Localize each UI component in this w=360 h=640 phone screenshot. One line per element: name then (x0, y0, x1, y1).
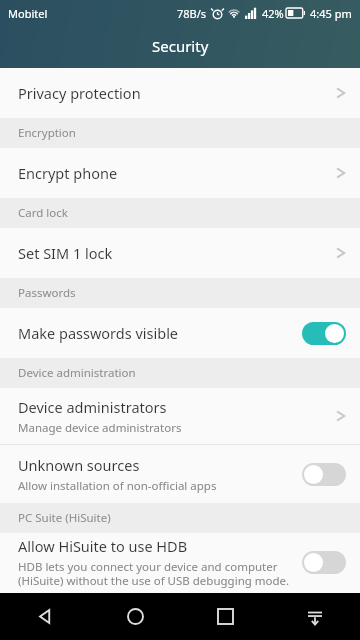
staticText: Passwords (18, 285, 76, 301)
button[interactable]: Toggle off (302, 463, 346, 486)
staticText: 78B/s (177, 6, 207, 21)
staticText: Encryption (18, 125, 76, 141)
button[interactable]: Privacy protection (0, 68, 360, 118)
staticText: Make passwords visible (18, 323, 179, 343)
button[interactable]: Hide navigation bar (270, 593, 360, 640)
staticText: Allow HiSuite to use HDB (18, 536, 188, 556)
staticText: Allow installation of non-official apps (18, 478, 217, 494)
button[interactable]: Home (90, 593, 180, 640)
staticText: Privacy protection (18, 83, 141, 103)
staticText: 42% (262, 6, 284, 21)
button[interactable]: Toggle off (302, 551, 346, 574)
staticText: PC Suite (HiSuite) (18, 510, 111, 526)
button[interactable]: Back (0, 593, 90, 640)
button[interactable]: Make passwords visible (0, 308, 360, 358)
staticText: Card lock (18, 205, 68, 221)
button[interactable]: Toggle on (302, 322, 346, 345)
staticText: Encrypt phone (18, 163, 118, 183)
button[interactable]: Encrypt phone (0, 148, 360, 198)
staticText: Device administration (18, 365, 136, 381)
button[interactable]: Device administrators (0, 388, 360, 444)
button[interactable]: Unknown sources (0, 445, 360, 503)
button[interactable]: Recent apps (180, 593, 270, 640)
button[interactable]: Set SIM 1 lock (0, 228, 360, 278)
staticText: Device administrators (18, 397, 167, 417)
staticText: 4:45 pm (310, 6, 352, 21)
staticText: Security (152, 36, 209, 56)
staticText: Set SIM 1 lock (18, 243, 113, 263)
staticText: Mobitel (8, 6, 48, 21)
staticText: Unknown sources (18, 455, 140, 475)
staticText: Manage device administrators (18, 420, 182, 436)
staticText: HDB lets you connect your device and com… (18, 559, 290, 588)
button[interactable]: Allow HiSuite to use HDB (0, 533, 360, 591)
